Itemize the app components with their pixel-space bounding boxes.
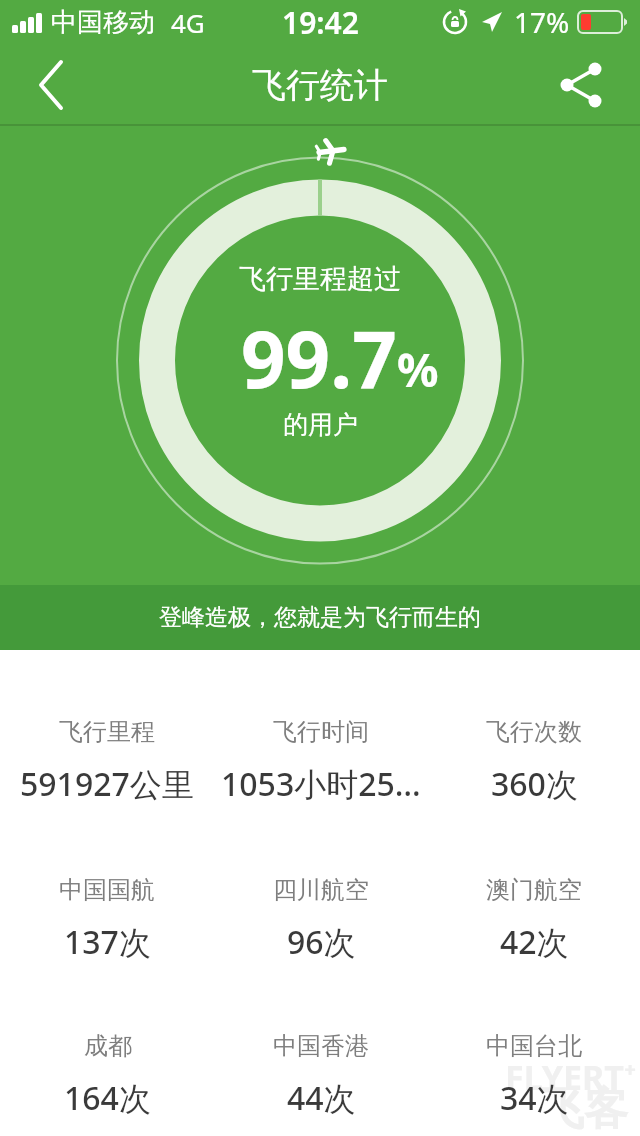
staticText: % (397, 338, 439, 401)
staticText: 137次 (64, 920, 151, 964)
staticText: 飞行次数 (486, 717, 582, 747)
staticText: 4G (171, 5, 205, 40)
staticText: FLYERT⁺ (505, 1054, 637, 1100)
staticText: 成都 (84, 1031, 132, 1061)
staticText: 591927公里 (20, 762, 194, 806)
button[interactable]: 中国香港 (273, 1031, 369, 1120)
button[interactable]: 飞行时间 (221, 717, 421, 806)
staticText: 飞行里程超过 (239, 262, 401, 296)
staticText: 飞行时间 (273, 717, 369, 747)
staticText: 澳门航空 (486, 875, 582, 905)
staticText: 登峰造极，您就是为飞行而生的 (159, 603, 481, 632)
button[interactable]: 成都 (64, 1031, 151, 1120)
staticText: 飞客 (540, 1082, 628, 1136)
staticText: 17% (514, 3, 570, 41)
staticText: 164次 (64, 1076, 151, 1120)
staticText: 96次 (287, 920, 356, 964)
staticText: 360次 (491, 762, 578, 806)
staticText: 的用户 (283, 409, 358, 440)
staticText: 44次 (287, 1076, 356, 1120)
staticText: 中国国航 (59, 875, 155, 905)
staticText: 中国香港 (273, 1031, 369, 1061)
staticText: 四川航空 (273, 875, 369, 905)
button[interactable]: 飞行里程 (20, 717, 194, 806)
button[interactable]: 中国台北 (486, 1031, 582, 1120)
staticText: 19:42 (282, 2, 359, 43)
staticText: 42次 (500, 920, 569, 964)
button[interactable]: 澳门航空 (486, 875, 582, 964)
staticText: 飞行统计 (252, 64, 388, 107)
staticText: 1053小时25… (221, 762, 421, 806)
button[interactable]: 四川航空 (273, 875, 369, 964)
staticText: 飞行里程 (59, 717, 155, 747)
button[interactable]: 飞行次数 (486, 717, 582, 806)
button[interactable] (28, 61, 76, 109)
button[interactable] (554, 59, 606, 111)
staticText: 中国移动 (51, 6, 155, 39)
staticText: 中国台北 (486, 1031, 582, 1061)
staticText: 34次 (500, 1076, 569, 1120)
button[interactable]: 中国国航 (59, 875, 155, 964)
staticText: 99.7 (241, 305, 397, 411)
